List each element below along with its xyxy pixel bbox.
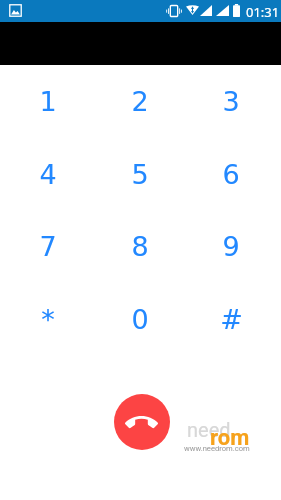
staticText: need bbox=[187, 418, 231, 441]
staticText: 1 bbox=[39, 86, 57, 117]
button[interactable]: 2 bbox=[100, 70, 180, 132]
button[interactable]: 3 bbox=[191, 70, 271, 132]
button[interactable]: * bbox=[8, 288, 88, 350]
staticText: www.needrom.com bbox=[184, 444, 250, 453]
button[interactable]: 5 bbox=[100, 143, 180, 205]
button[interactable]: 4 bbox=[8, 143, 88, 205]
staticText: * bbox=[41, 304, 55, 335]
staticText: 7 bbox=[39, 231, 57, 262]
button[interactable]: 1 bbox=[8, 70, 88, 132]
staticText: # bbox=[220, 304, 243, 335]
button[interactable]: 7 bbox=[8, 215, 88, 277]
staticText: 8 bbox=[131, 231, 149, 262]
other: Screenshot captured bbox=[9, 4, 22, 17]
button[interactable]: # bbox=[191, 288, 271, 350]
staticText: 01:31 bbox=[246, 3, 280, 21]
button[interactable]: End call bbox=[114, 394, 170, 450]
staticText: 4 bbox=[39, 159, 57, 190]
button[interactable]: 9 bbox=[191, 215, 271, 277]
staticText: 5 bbox=[131, 159, 149, 190]
button[interactable]: 6 bbox=[191, 143, 271, 205]
staticText: 0 bbox=[131, 304, 149, 335]
button[interactable]: 0 bbox=[100, 288, 180, 350]
staticText: 2 bbox=[131, 86, 149, 117]
staticText: 3 bbox=[222, 86, 240, 117]
staticText: 6 bbox=[222, 159, 240, 190]
button[interactable]: 8 bbox=[100, 215, 180, 277]
staticText: rom bbox=[210, 425, 250, 451]
staticText: 9 bbox=[222, 231, 240, 262]
